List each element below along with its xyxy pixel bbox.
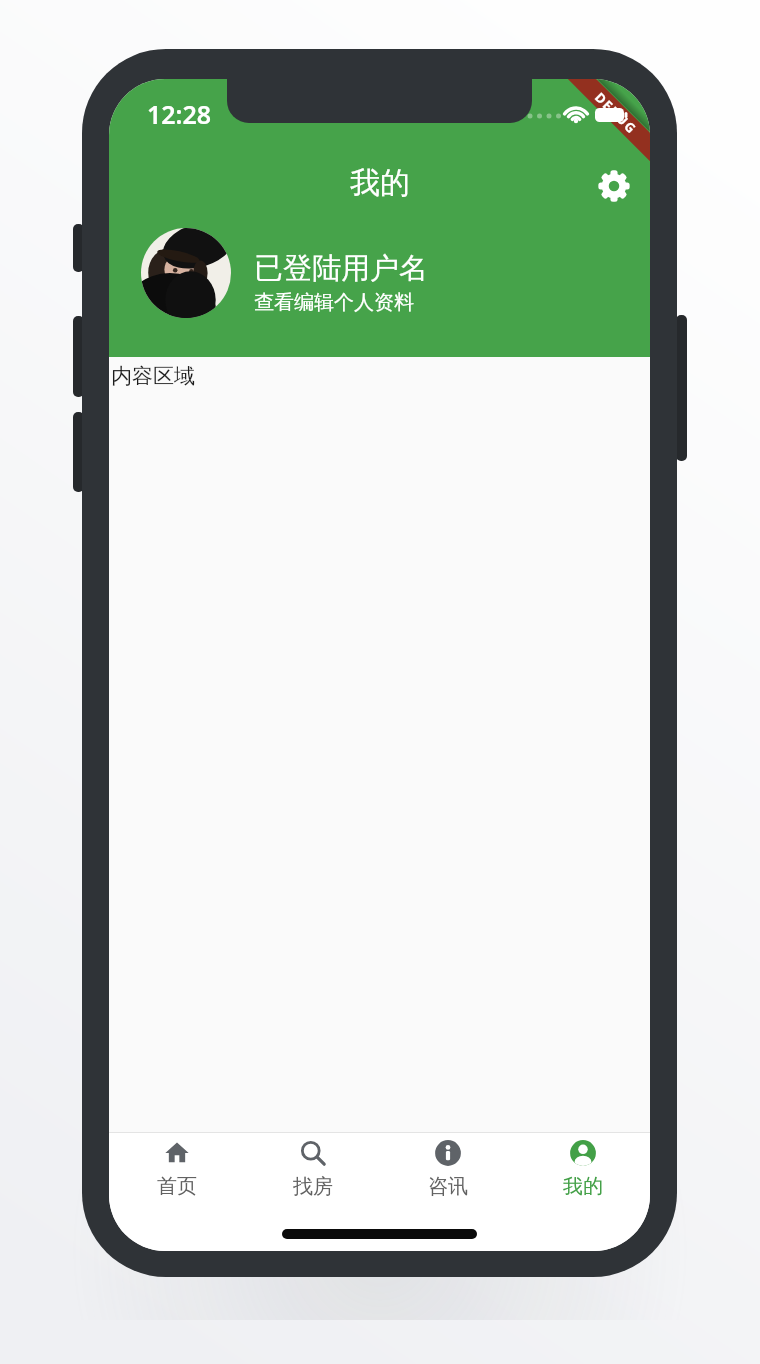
staticText: 内容区域 bbox=[111, 363, 195, 389]
staticText: 咨讯 bbox=[428, 1174, 468, 1199]
staticText: 找房 bbox=[293, 1174, 333, 1199]
staticText: 我的 bbox=[563, 1174, 603, 1199]
staticText: 首页 bbox=[157, 1174, 197, 1199]
button[interactable]: 我的 bbox=[515, 1133, 650, 1233]
button[interactable] bbox=[597, 169, 631, 203]
staticText: 查看编辑个人资料 bbox=[254, 290, 414, 315]
staticText: 已登陆用户名 bbox=[254, 250, 428, 287]
button[interactable]: 找房 bbox=[245, 1133, 380, 1233]
button[interactable]: 咨讯 bbox=[380, 1133, 515, 1233]
staticText: 12:28 bbox=[147, 97, 212, 131]
staticText: 我的 bbox=[350, 164, 410, 202]
button[interactable]: 已登陆用户名 bbox=[254, 250, 428, 315]
button[interactable] bbox=[141, 228, 231, 318]
button[interactable]: 首页 bbox=[109, 1133, 245, 1233]
staticText: DEBUG bbox=[591, 88, 641, 138]
